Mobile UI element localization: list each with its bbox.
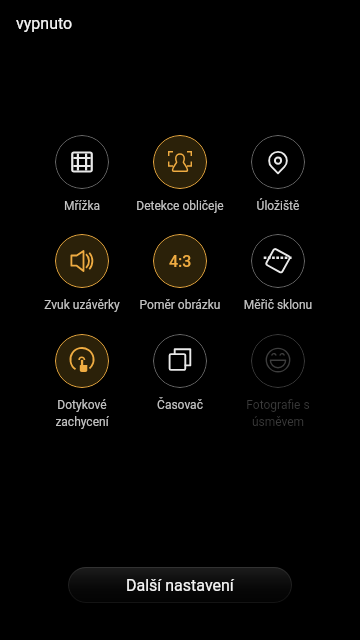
button[interactable]: Úložiště <box>229 135 327 213</box>
staticText: Úložiště <box>229 199 327 213</box>
button[interactable]: Zvuk uzávěrky <box>33 234 131 312</box>
button[interactable]: Mřížka <box>33 135 131 213</box>
button[interactable]: Poměr obrázku <box>131 234 229 312</box>
button[interactable]: Detekce obličeje <box>131 135 229 213</box>
button[interactable]: Fotografie s úsměvem <box>229 334 327 429</box>
staticText: vypnuto <box>16 14 73 33</box>
staticText: 4:3 <box>169 252 192 271</box>
button[interactable]: Dotykové zachycení <box>33 334 131 429</box>
staticText: Dotykové zachycení <box>33 398 131 429</box>
staticText: Další nastavení <box>126 576 234 595</box>
button[interactable]: Časovač <box>131 334 229 412</box>
staticText: Časovač <box>131 398 229 412</box>
button[interactable]: Měřič sklonu <box>229 234 327 312</box>
staticText: Fotografie s úsměvem <box>229 398 327 429</box>
button[interactable]: Další nastavení <box>68 567 292 603</box>
staticText: Měřič sklonu <box>229 298 327 312</box>
staticText: Mřížka <box>33 199 131 213</box>
staticText: Detekce obličeje <box>131 199 229 213</box>
staticText: Zvuk uzávěrky <box>33 298 131 312</box>
staticText: Poměr obrázku <box>131 298 229 312</box>
